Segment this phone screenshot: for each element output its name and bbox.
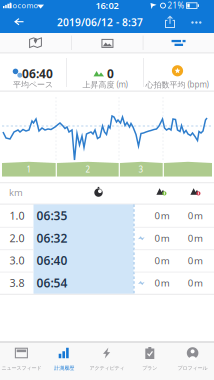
staticText: プロフィール	[178, 365, 208, 371]
staticText: 06:40	[22, 66, 53, 81]
staticText: 3	[138, 164, 143, 175]
staticText: 06:35	[36, 208, 67, 223]
staticText: 06:32	[36, 230, 67, 246]
button[interactable]: Share	[159, 11, 181, 33]
staticText: 平均ペース	[13, 80, 53, 89]
button[interactable]: Photos	[71, 33, 142, 52]
button[interactable]: Map	[0, 33, 71, 52]
button[interactable]: アクティビティ	[86, 341, 128, 380]
staticText: 3.0	[9, 253, 24, 267]
staticText: 0	[154, 231, 159, 245]
staticText: 06:54	[36, 275, 67, 291]
staticText: 2.0	[9, 231, 24, 245]
button[interactable]: プロフィール	[171, 341, 214, 380]
staticText: 0	[154, 254, 159, 267]
staticText: アクティビティ	[89, 365, 124, 371]
staticText: 上昇高度 (m)	[82, 79, 127, 90]
staticText: m	[161, 276, 170, 289]
button[interactable]: 計測履歴	[43, 341, 86, 380]
button[interactable]: More	[187, 11, 205, 33]
staticText: m	[161, 209, 170, 222]
staticText: ニュースフィード	[1, 365, 41, 371]
staticText: 0	[154, 209, 159, 222]
button[interactable]: Stats	[142, 33, 214, 52]
staticText: m	[161, 254, 170, 267]
staticText: docomo	[7, 0, 38, 10]
staticText: m	[194, 254, 203, 267]
staticText: 心拍数平均 (bpm)	[145, 79, 208, 90]
staticText: 3.8	[9, 276, 24, 290]
button[interactable]: ニュースフィード	[0, 341, 43, 380]
staticText: m	[194, 276, 203, 289]
staticText: 2	[85, 164, 90, 175]
staticText: 0	[188, 209, 193, 222]
staticText: m	[194, 231, 203, 245]
staticText: 06:40	[36, 252, 67, 268]
staticText: m	[194, 209, 203, 222]
staticText: 16:02	[95, 0, 118, 11]
staticText: 1	[26, 164, 31, 175]
staticText: m	[161, 231, 170, 245]
staticText: 2019/06/12 - 8:37	[57, 15, 143, 29]
staticText: 0	[188, 276, 193, 289]
staticText: 1.0	[9, 208, 24, 223]
staticText: 0	[188, 254, 193, 267]
button[interactable]: Back	[0, 11, 34, 33]
staticText: プラン	[142, 365, 157, 371]
staticText: km	[9, 186, 23, 199]
staticText: 0	[107, 66, 114, 81]
staticText: 0	[188, 231, 193, 245]
staticText: 計測履歴	[54, 365, 74, 371]
staticText: 21%	[167, 0, 184, 11]
staticText: 0	[154, 276, 159, 289]
button[interactable]: プラン	[128, 341, 171, 380]
